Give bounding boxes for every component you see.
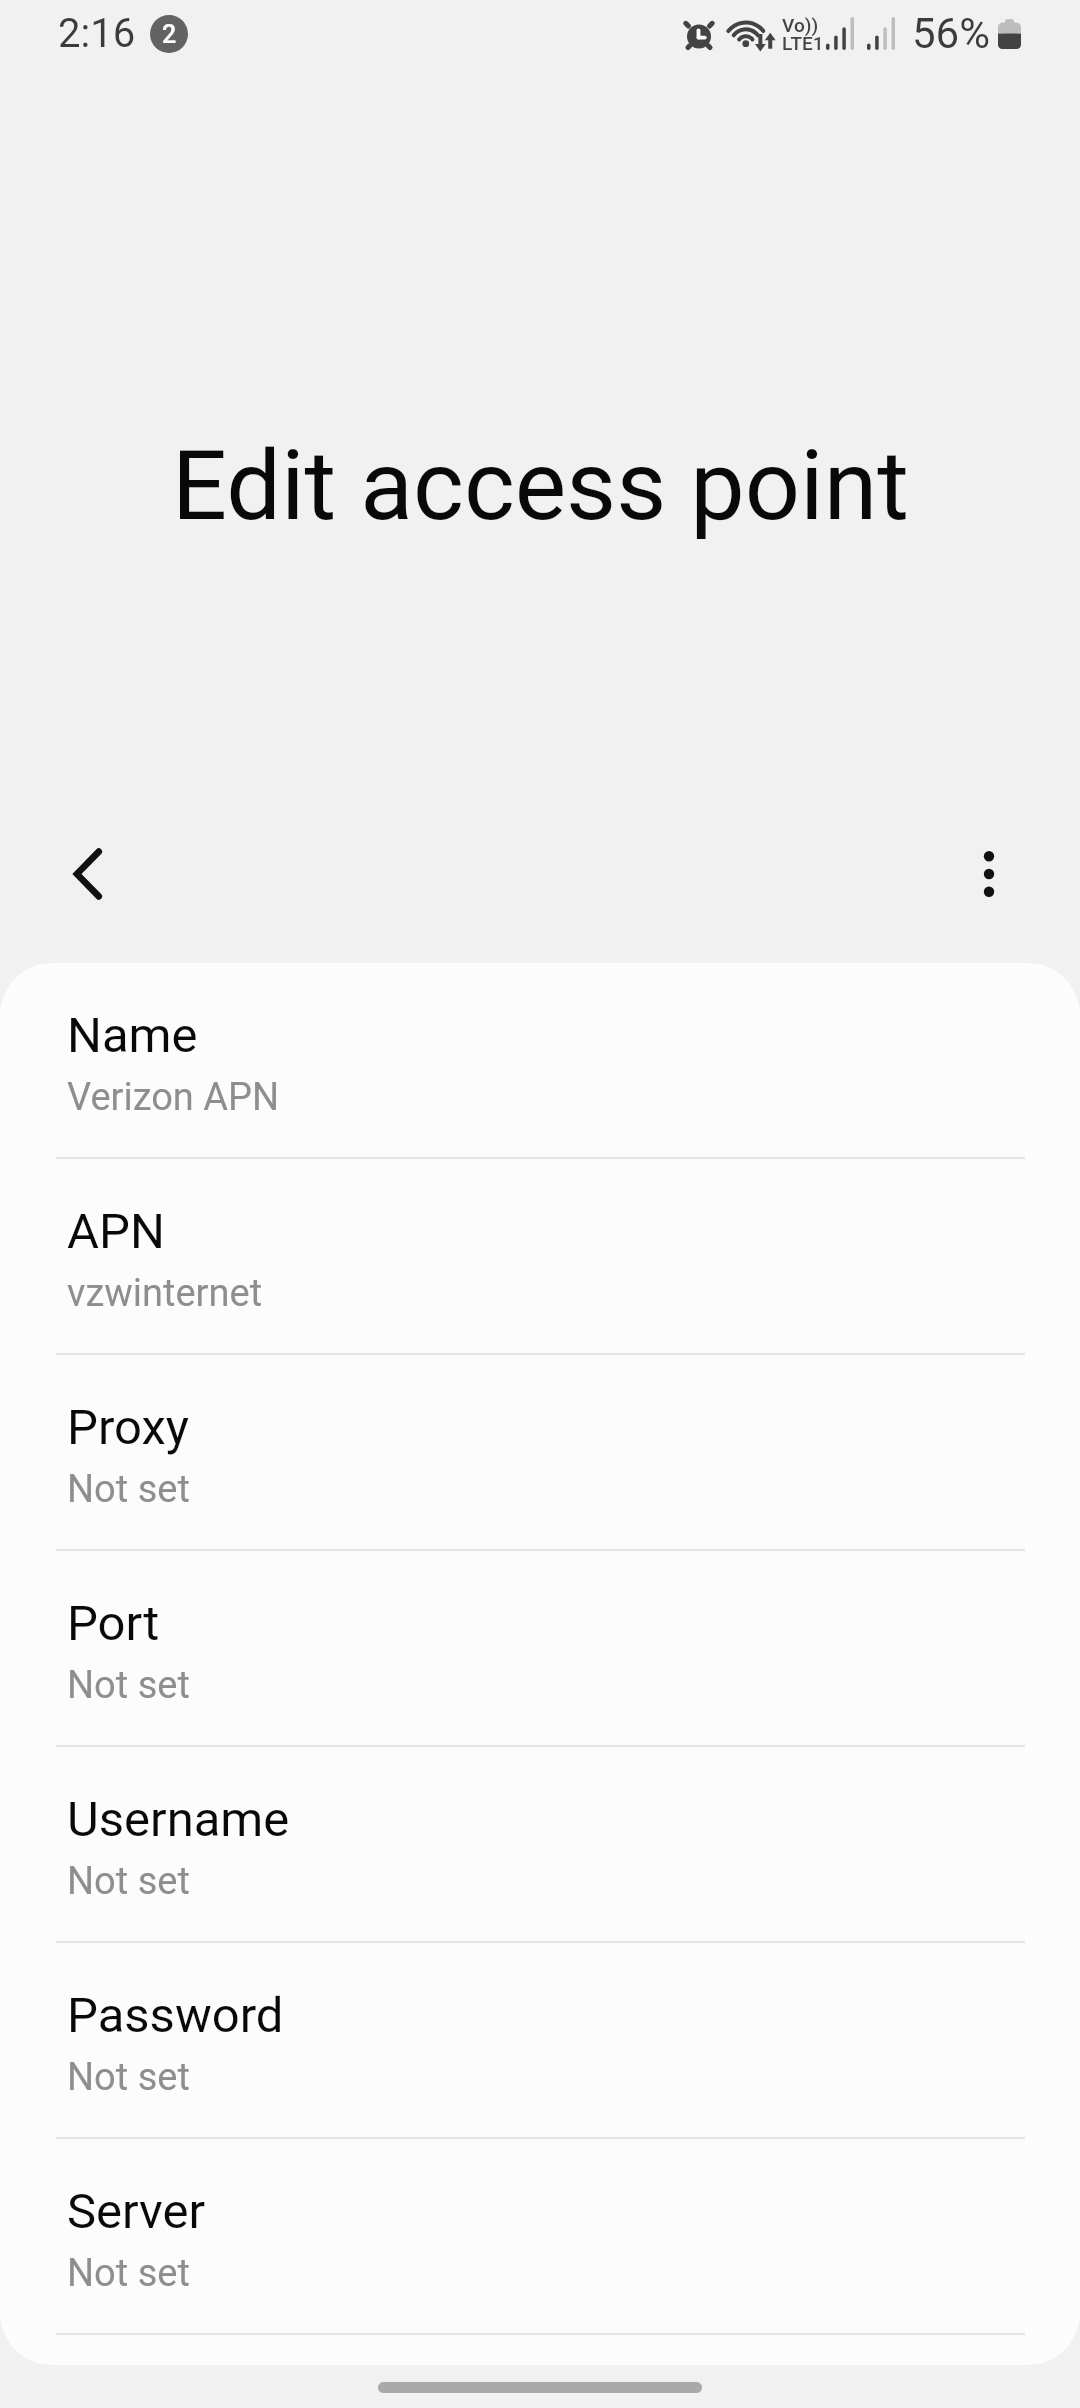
staticText: 56% <box>912 9 990 58</box>
staticText: Not set <box>67 1467 190 1512</box>
staticText: Not set <box>67 2055 190 2100</box>
staticText: APN <box>67 1203 165 1260</box>
button[interactable]: Navigate up <box>48 834 128 914</box>
staticText: Not set <box>67 2251 190 2296</box>
staticText: Server <box>67 2183 206 2240</box>
staticText: Edit access point <box>172 429 909 543</box>
button[interactable]: APN <box>0 1159 1080 1355</box>
staticText: Not set <box>67 1663 190 1708</box>
staticText: Name <box>67 1007 198 1064</box>
button[interactable]: Username <box>0 1747 1080 1943</box>
button[interactable]: Name <box>0 963 1080 1159</box>
staticText: vzwinternet <box>67 1271 263 1316</box>
staticText: Vo)) <box>782 14 819 36</box>
staticText: Password <box>67 1987 284 2044</box>
button[interactable]: More options <box>949 834 1029 914</box>
button[interactable]: Proxy <box>0 1355 1080 1551</box>
staticText: Not set <box>67 1859 190 1904</box>
staticText: Verizon APN <box>67 1075 280 1120</box>
staticText: 2:16 <box>58 10 136 57</box>
button[interactable]: Port <box>0 1551 1080 1747</box>
staticText: 2 <box>162 20 177 49</box>
staticText: LTE1 <box>782 32 824 54</box>
staticText: Proxy <box>67 1399 189 1456</box>
staticText: Port <box>67 1595 160 1652</box>
button[interactable]: Password <box>0 1943 1080 2139</box>
staticText: Username <box>67 1791 290 1848</box>
button[interactable]: Server <box>0 2139 1080 2335</box>
